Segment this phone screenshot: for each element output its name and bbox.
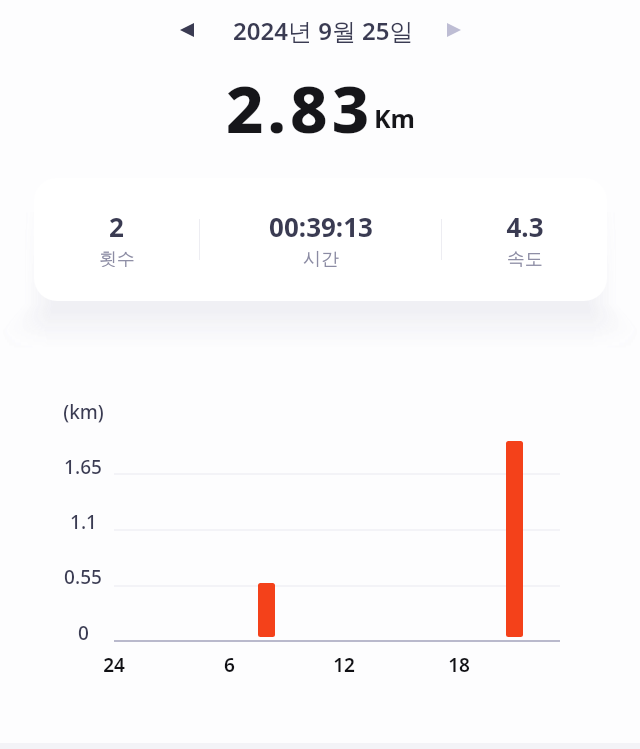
button[interactable]: Next day — [434, 10, 474, 50]
staticText: 12 — [333, 652, 355, 678]
staticText: Km — [374, 101, 415, 135]
staticText: 시간 — [303, 248, 339, 271]
staticText: 횟수 — [99, 248, 135, 271]
staticText: 4.3 — [506, 209, 544, 244]
staticText: 0.55 — [64, 564, 102, 590]
staticText: 6 — [224, 652, 235, 678]
staticText: 속도 — [507, 248, 543, 271]
button[interactable]: 00:39:13 — [200, 178, 441, 301]
staticText: 00:39:13 — [269, 209, 373, 244]
staticText: 2 — [109, 209, 124, 244]
button[interactable]: Previous day — [167, 10, 207, 50]
staticText: 1.65 — [64, 454, 102, 480]
staticText: 18 — [448, 652, 470, 678]
staticText: 24 — [103, 652, 125, 678]
staticText: 2024년 9월 25일 — [233, 14, 414, 47]
staticText: 1.1 — [70, 509, 97, 535]
staticText: 0 — [78, 620, 89, 646]
button[interactable]: 2 — [34, 178, 199, 301]
staticText: (km) — [63, 399, 104, 425]
staticText: 2.83 — [226, 64, 374, 153]
button[interactable]: 4.3 — [442, 178, 607, 301]
